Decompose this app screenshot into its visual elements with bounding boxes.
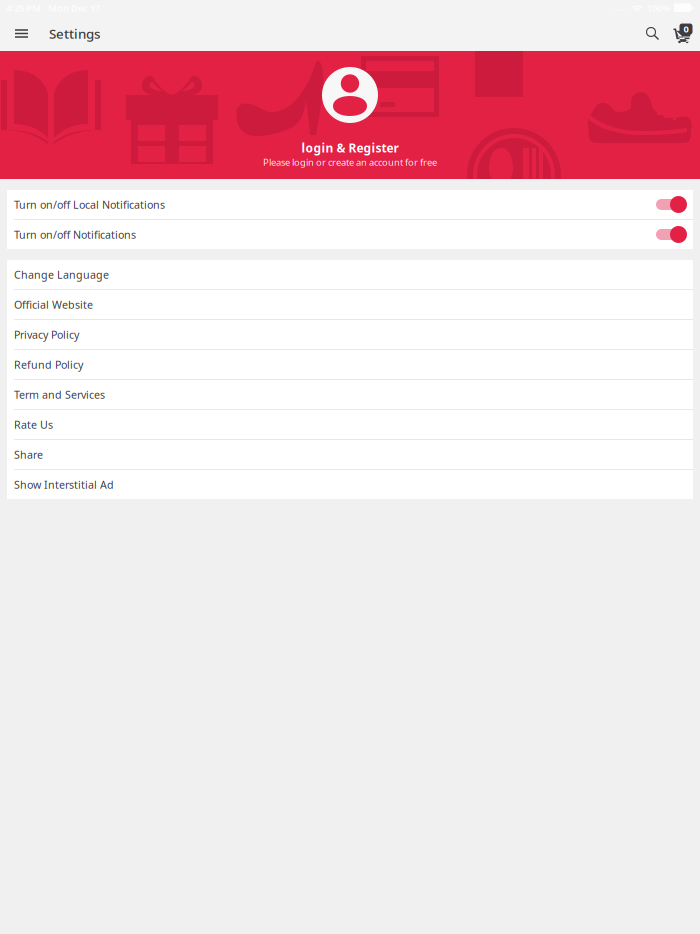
staticText: Refund Policy	[14, 357, 83, 372]
staticText: Change Language	[14, 267, 109, 282]
button[interactable]: Show Interstitial Ad	[7, 470, 693, 499]
staticText: Term and Services	[14, 387, 105, 402]
staticText: Please login or create an account for fr…	[263, 156, 437, 168]
button[interactable]: Privacy Policy	[7, 320, 693, 349]
staticText: Turn on/off Local Notifications	[14, 197, 165, 212]
staticText: 0	[683, 23, 688, 35]
staticText: Rate Us	[14, 417, 53, 432]
button[interactable]: Official Website	[7, 290, 693, 319]
staticText: login & Register	[301, 140, 398, 156]
button[interactable]: Rate Us	[7, 410, 693, 439]
staticText: Turn on/off Notifications	[14, 227, 136, 242]
staticText: Official Website	[14, 297, 93, 312]
button[interactable]: Turn on/off Notifications	[7, 220, 693, 249]
staticText: Privacy Policy	[14, 327, 79, 342]
staticText: Settings	[49, 25, 100, 42]
button[interactable]: Refund Policy	[7, 350, 693, 379]
button[interactable]: Menu	[6, 16, 37, 51]
button[interactable]: Shopping cart, 0 items	[672, 16, 694, 51]
staticText: Share	[14, 447, 43, 462]
staticText: Show Interstitial Ad	[14, 477, 114, 492]
button[interactable]: Search	[637, 16, 668, 51]
button[interactable]: Change Language	[7, 260, 693, 289]
button[interactable]: Term and Services	[7, 380, 693, 409]
button[interactable]: Share	[7, 440, 693, 469]
button[interactable]: Turn on/off Local Notifications	[7, 190, 693, 219]
